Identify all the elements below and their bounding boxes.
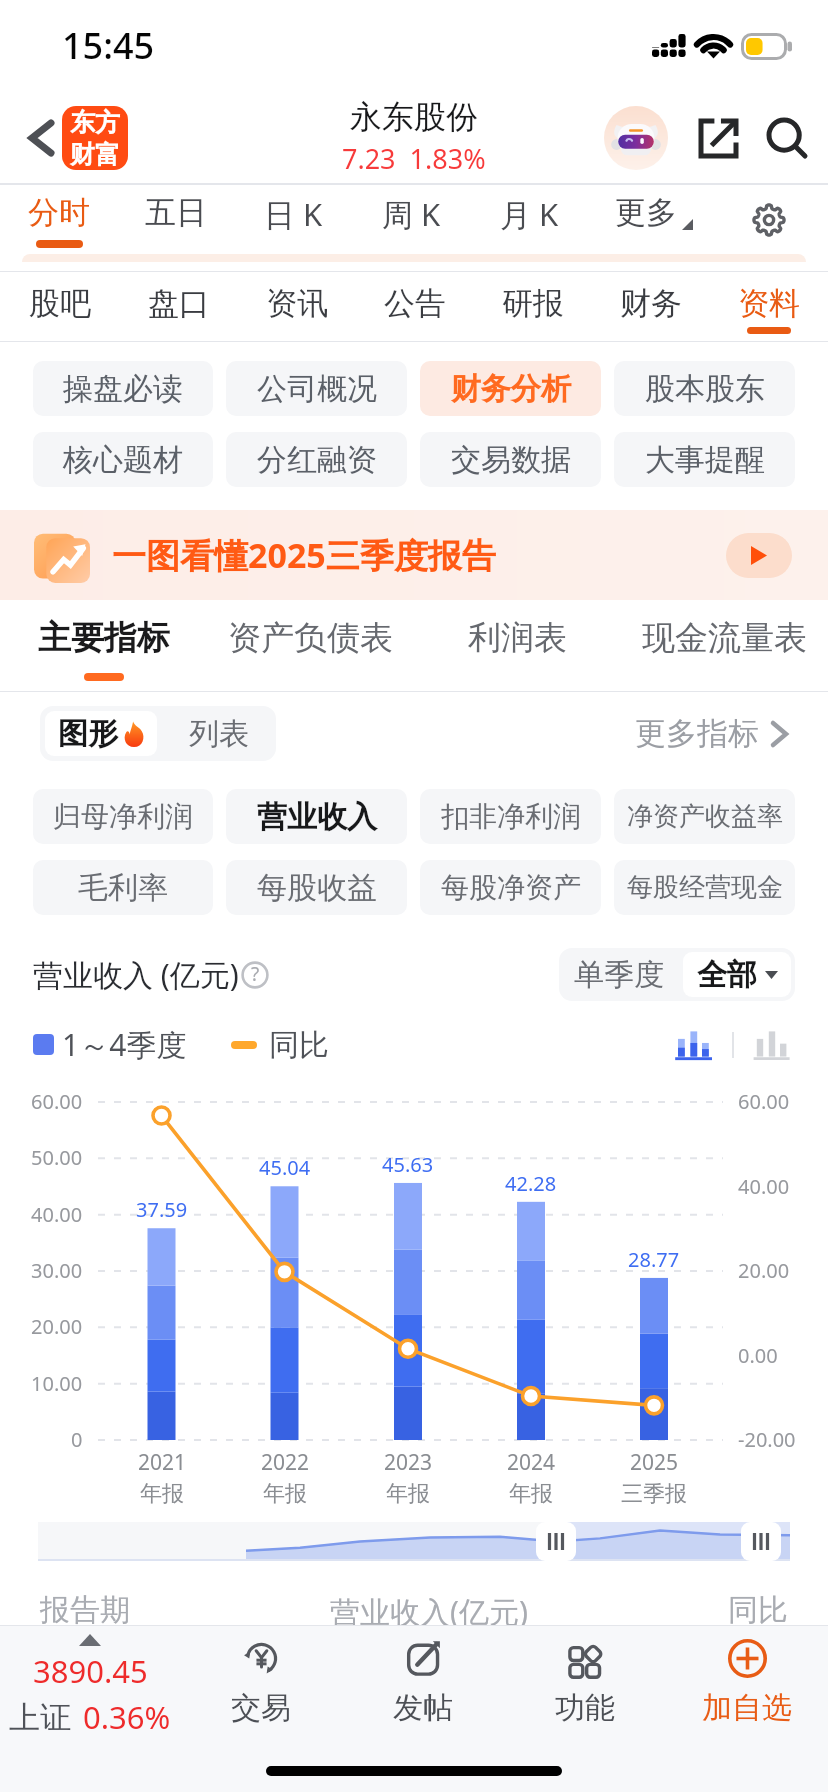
button[interactable]: 资产负债表 — [207, 600, 414, 692]
button[interactable]: 公告 — [356, 272, 474, 342]
button[interactable]: 五日 — [117, 184, 234, 253]
staticText: 列表 — [189, 715, 249, 753]
staticText: 股本股东 — [645, 370, 765, 408]
button[interactable]: 更多指标 — [635, 714, 788, 753]
staticText: 财务 — [620, 284, 682, 323]
staticText: ? — [251, 961, 260, 987]
button[interactable]: 一图看懂2025三季度报告 — [0, 510, 828, 600]
button[interactable]: 研报 — [474, 272, 592, 342]
button[interactable]: 3890.45 — [0, 1626, 180, 1740]
button[interactable]: 交易 — [180, 1626, 342, 1740]
staticText: 公司概况 — [257, 370, 377, 408]
staticText: 2023 — [384, 1448, 433, 1477]
staticText: 一图看懂2025三季度报告 — [112, 532, 496, 578]
button[interactable]: 单季度 — [559, 948, 679, 1001]
staticText: 营业收入 (亿元) — [33, 954, 239, 995]
staticText: 上证 — [9, 1698, 71, 1737]
button[interactable]: 全部 — [683, 952, 791, 997]
staticText: 30.00 — [31, 1257, 83, 1284]
button[interactable]: 周 K — [352, 184, 470, 253]
button[interactable]: 财务分析 — [420, 361, 601, 416]
button[interactable]: 分红融资 — [226, 432, 407, 487]
staticText: 利润表 — [468, 617, 567, 659]
button[interactable]: 交易数据 — [420, 432, 601, 487]
button[interactable]: 毛利率 — [33, 860, 213, 915]
button[interactable]: Play — [726, 533, 792, 578]
button[interactable]: 盘口 — [119, 272, 238, 342]
button[interactable]: 核心题材 — [33, 432, 213, 487]
staticText: 2021 — [138, 1448, 187, 1477]
staticText: 分时 — [28, 193, 90, 232]
button[interactable]: 资讯 — [238, 272, 356, 342]
button[interactable]: 每股收益 — [226, 860, 407, 915]
button[interactable]: 操盘必读 — [33, 361, 213, 416]
button[interactable]: 更多 — [588, 184, 720, 253]
button[interactable]: 东方 — [62, 106, 128, 170]
staticText: 年报 — [140, 1480, 184, 1508]
button[interactable]: 营业收入 — [226, 789, 407, 844]
staticText: 财务分析 — [451, 370, 571, 408]
staticText: 40.00 — [31, 1201, 83, 1228]
button[interactable]: Share — [690, 110, 746, 166]
button[interactable]: 扣非净利润 — [420, 789, 601, 844]
staticText: 60.00 — [738, 1088, 790, 1115]
staticText: 财富 — [70, 139, 120, 170]
button[interactable]: 股吧 — [0, 272, 119, 342]
staticText: 公告 — [384, 284, 446, 323]
staticText: 资料 — [738, 284, 800, 323]
button[interactable]: Help — [241, 961, 269, 989]
button[interactable]: Settings — [720, 184, 828, 253]
staticText: 每股经营现金 — [627, 871, 783, 904]
button[interactable]: 现金流量表 — [621, 600, 828, 692]
button[interactable]: 资料 — [710, 272, 828, 342]
button[interactable]: 日 K — [234, 184, 352, 253]
staticText: 更多指标 — [635, 714, 759, 753]
staticText: 报告期 — [40, 1591, 130, 1629]
staticText: 0.36% — [83, 1696, 171, 1738]
button[interactable]: Stacked bars — [674, 1028, 714, 1062]
button[interactable]: 列表 — [162, 706, 276, 761]
button[interactable]: 每股净资产 — [420, 860, 601, 915]
staticText: 3890.45 — [33, 1650, 148, 1692]
button[interactable]: 财务 — [592, 272, 710, 342]
button[interactable]: 主要指标 — [0, 600, 207, 692]
button[interactable]: AI assistant — [604, 106, 668, 170]
button[interactable]: Search — [760, 111, 814, 165]
staticText: 日 K — [264, 193, 323, 235]
button[interactable]: Back — [14, 111, 68, 165]
button[interactable]: Range handle — [536, 1522, 576, 1561]
staticText: 20.00 — [31, 1313, 83, 1340]
button[interactable]: 大事提醒 — [614, 432, 795, 487]
staticText: 核心题材 — [63, 441, 183, 479]
button[interactable]: 发帖 — [342, 1626, 504, 1740]
staticText: 15:45 — [62, 21, 155, 70]
staticText: 月 K — [500, 193, 559, 235]
staticText: 营业收入(亿元) — [330, 1591, 528, 1632]
button[interactable]: Range handle — [741, 1522, 781, 1561]
button[interactable]: 公司概况 — [226, 361, 407, 416]
button[interactable]: 功能 — [504, 1626, 666, 1740]
staticText: 股吧 — [29, 284, 91, 323]
button[interactable]: 每股经营现金 — [614, 860, 795, 915]
button[interactable]: Plain bars — [752, 1028, 792, 1062]
staticText: 每股净资产 — [441, 870, 581, 905]
button[interactable]: 加自选 — [666, 1626, 828, 1740]
staticText: 加自选 — [702, 1689, 792, 1727]
button[interactable]: 图形 — [45, 711, 157, 756]
button[interactable]: 股本股东 — [614, 361, 795, 416]
staticText: 60.00 — [31, 1088, 83, 1115]
button[interactable]: 利润表 — [414, 600, 621, 692]
staticText: 40.00 — [738, 1173, 790, 1200]
staticText: 三季报 — [621, 1480, 687, 1508]
staticText: 研报 — [502, 284, 564, 323]
staticText: 全部 — [697, 956, 757, 994]
staticText: 交易 — [231, 1689, 291, 1727]
button[interactable]: 分时 — [0, 184, 117, 253]
button[interactable]: 归母净利润 — [33, 789, 213, 844]
staticText: 操盘必读 — [63, 370, 183, 408]
button[interactable]: 净资产收益率 — [614, 789, 795, 844]
staticText: 2022 — [261, 1448, 310, 1477]
button[interactable]: 月 K — [470, 184, 588, 253]
staticText: 年报 — [386, 1480, 430, 1508]
staticText: 45.04 — [259, 1154, 311, 1181]
